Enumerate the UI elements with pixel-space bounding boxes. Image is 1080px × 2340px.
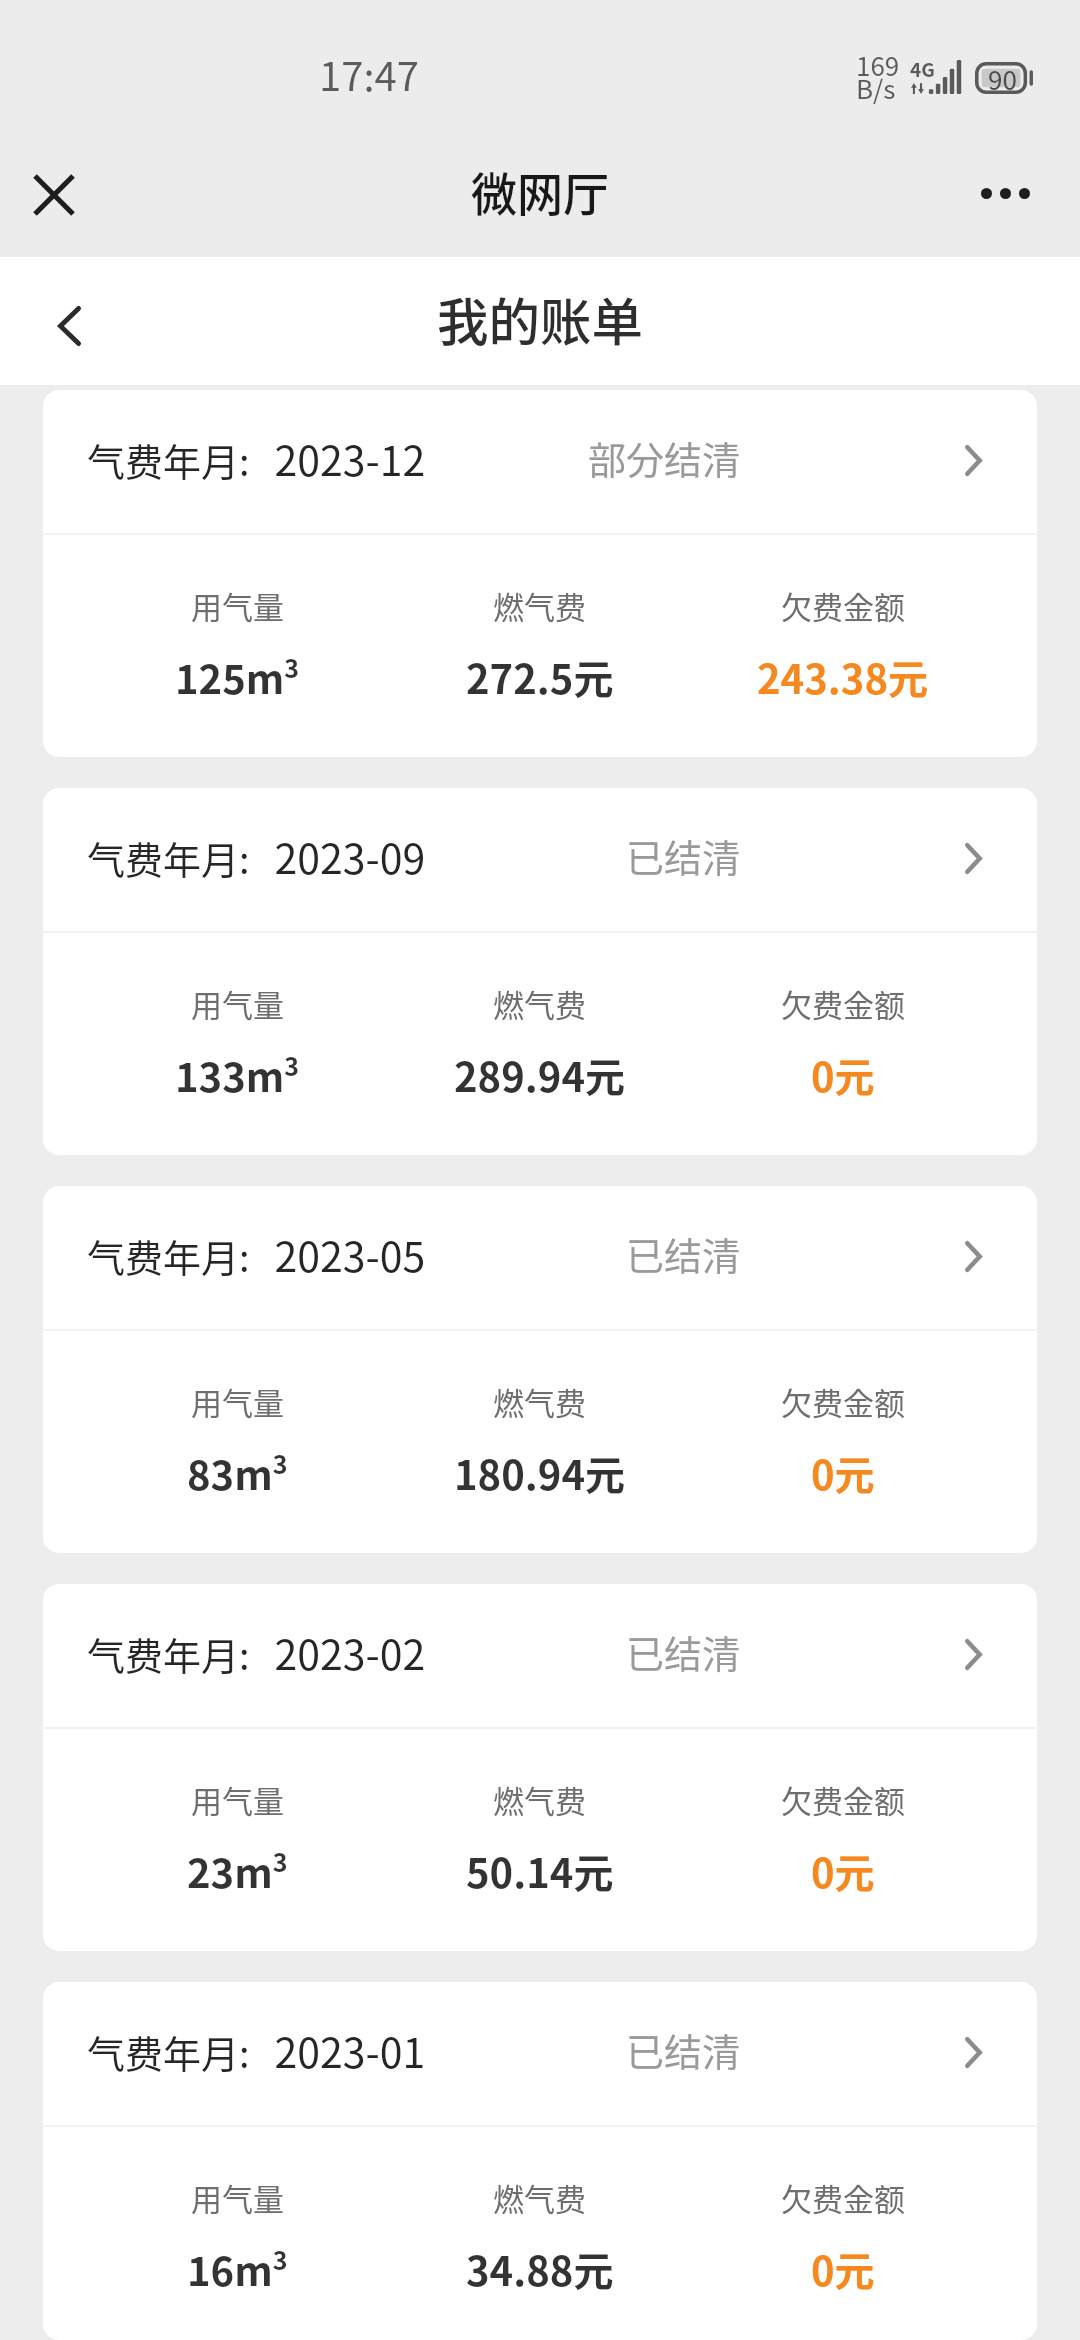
staticText: 34.88元 — [466, 2240, 614, 2298]
staticText: 83m3 — [187, 1444, 288, 1502]
staticText: 气费年月:2023-01 — [87, 2020, 426, 2079]
staticText: 用气量 — [191, 981, 284, 1026]
staticText: 4G — [910, 55, 935, 83]
button[interactable]: 气费年月:2023-09 — [43, 788, 1037, 1155]
staticText: 已结清 — [626, 828, 741, 883]
staticText: 243.38元 — [757, 648, 928, 706]
staticText: 微网厅 — [471, 158, 609, 225]
staticText: 已结清 — [626, 2022, 741, 2077]
staticText: 0元 — [811, 1444, 875, 1502]
staticText: 用气量 — [191, 1379, 284, 1424]
button[interactable]: Close — [0, 140, 130, 257]
staticText: 0元 — [811, 2240, 875, 2298]
staticText: 气费年月:2023-09 — [87, 826, 426, 885]
staticText: 272.5元 — [466, 648, 614, 706]
staticText: 169 B/s — [856, 46, 900, 106]
staticText: 气费年月:2023-05 — [87, 1224, 426, 1283]
staticText: 欠费金额 — [781, 1379, 905, 1424]
button[interactable]: Back — [0, 257, 138, 385]
staticText: 90 — [988, 60, 1017, 92]
staticText: 用气量 — [191, 2175, 284, 2220]
staticText: 燃气费 — [493, 1777, 586, 1822]
staticText: 我的账单 — [437, 281, 644, 356]
button[interactable]: More options — [940, 140, 1080, 257]
staticText: 133m3 — [175, 1046, 300, 1104]
staticText: 燃气费 — [493, 1379, 586, 1424]
staticText: 23m3 — [187, 1842, 288, 1900]
button[interactable]: 气费年月:2023-12 — [43, 390, 1037, 757]
staticText: 部分结清 — [588, 430, 741, 485]
staticText: 180.94元 — [454, 1444, 625, 1502]
staticText: 0元 — [811, 1046, 875, 1104]
staticText: 已结清 — [626, 1226, 741, 1281]
button[interactable]: 气费年月:2023-05 — [43, 1186, 1037, 1553]
staticText: 用气量 — [191, 1777, 284, 1822]
staticText: 用气量 — [191, 583, 284, 628]
staticText: 欠费金额 — [781, 583, 905, 628]
staticText: 125m3 — [175, 648, 300, 706]
staticText: 欠费金额 — [781, 981, 905, 1026]
staticText: 欠费金额 — [781, 1777, 905, 1822]
button[interactable]: 气费年月:2023-02 — [43, 1584, 1037, 1951]
staticText: 欠费金额 — [781, 2175, 905, 2220]
staticText: 已结清 — [626, 1624, 741, 1679]
staticText: 0元 — [811, 1842, 875, 1900]
button[interactable]: 气费年月:2023-01 — [43, 1982, 1037, 2340]
staticText: 17:47 — [319, 45, 419, 103]
staticText: 燃气费 — [493, 981, 586, 1026]
staticText: 289.94元 — [454, 1046, 625, 1104]
staticText: 气费年月:2023-12 — [87, 428, 426, 487]
staticText: 50.14元 — [466, 1842, 614, 1900]
staticText: 16m3 — [187, 2240, 288, 2298]
staticText: 燃气费 — [493, 2175, 586, 2220]
staticText: 气费年月:2023-02 — [87, 1622, 426, 1681]
staticText: 燃气费 — [493, 583, 586, 628]
